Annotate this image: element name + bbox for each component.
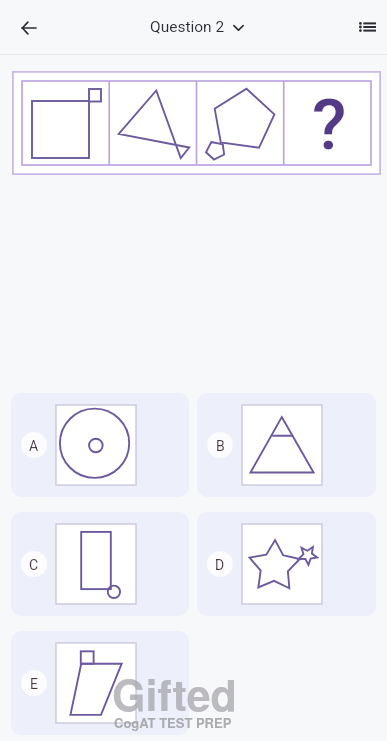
- button[interactable]: C: [11, 512, 189, 616]
- staticText: B: [216, 438, 225, 454]
- staticText: D: [215, 557, 225, 573]
- staticText: Question 2: [150, 18, 225, 36]
- button[interactable]: Question list: [348, 8, 386, 46]
- staticText: E: [30, 676, 38, 692]
- button[interactable]: Back: [9, 8, 48, 47]
- button[interactable]: Question 2: [150, 18, 245, 36]
- button[interactable]: E: [11, 631, 189, 735]
- staticText: ?: [312, 83, 347, 166]
- button[interactable]: A: [11, 393, 189, 497]
- staticText: C: [29, 557, 39, 573]
- staticText: Gifted: [112, 663, 237, 725]
- button[interactable]: D: [197, 512, 376, 616]
- button[interactable]: B: [197, 393, 376, 497]
- staticText: A: [29, 438, 39, 454]
- staticText: CogAT TEST PREP: [114, 713, 232, 732]
